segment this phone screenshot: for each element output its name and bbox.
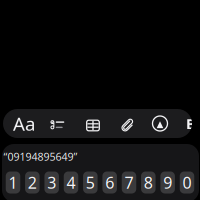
button[interactable]: 7 [122,171,136,193]
button[interactable]: 4 [64,171,78,193]
button[interactable]: 8 [141,171,156,193]
button[interactable]: “09194895649” [3,144,123,169]
staticText: 1 [8,172,17,193]
staticText: 2 [28,172,37,193]
staticText: 7 [124,172,133,193]
staticText: 4 [66,172,75,193]
staticText: B [186,114,196,133]
button[interactable]: Table [76,109,108,138]
staticText: 9 [163,172,172,193]
staticText: “09194895649” [3,149,77,164]
button[interactable]: 2 [25,171,40,193]
button[interactable]: Aa [3,109,45,138]
button[interactable]: Checklist [40,109,72,138]
button[interactable]: Bold [184,109,198,138]
staticText: 3 [47,172,56,193]
button[interactable]: 9 [160,171,175,193]
button[interactable]: 0 [180,171,194,193]
staticText: 0 [182,172,191,193]
button[interactable]: 3 [44,171,59,193]
staticText: 8 [144,172,153,193]
button[interactable]: Markup [144,109,176,138]
button[interactable]: 6 [102,171,117,193]
button[interactable]: 1 [6,171,20,193]
button[interactable]: Attach [111,109,143,138]
staticText: 5 [86,172,95,193]
button[interactable]: 5 [83,171,98,193]
staticText: 6 [105,172,114,193]
staticText: Aa [13,111,35,136]
